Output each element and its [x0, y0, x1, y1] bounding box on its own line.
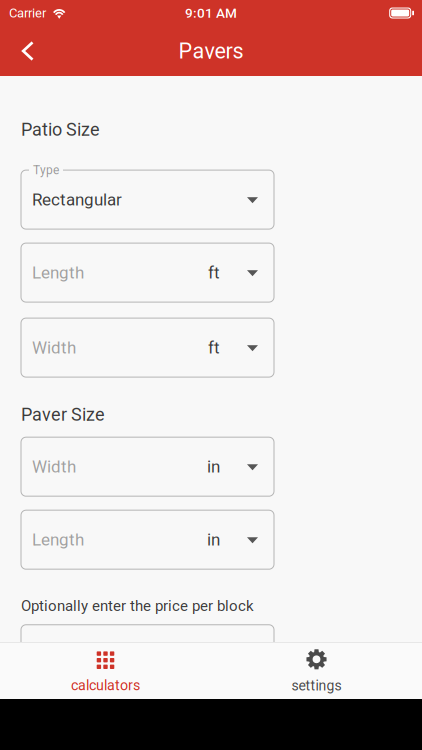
staticText: settings	[291, 677, 341, 694]
button[interactable]: Width	[21, 318, 274, 377]
staticText: Length	[32, 263, 84, 282]
staticText: Patio Size	[21, 119, 100, 140]
staticText: Type	[33, 163, 59, 177]
button[interactable]: calculators	[0, 642, 211, 699]
staticText: Carrier	[9, 5, 46, 21]
staticText: ft	[208, 338, 220, 357]
staticText: calculators	[71, 677, 140, 694]
staticText: Optionally enter the price per block	[21, 597, 254, 615]
button[interactable]: Back	[0, 26, 64, 76]
staticText: in	[207, 530, 220, 550]
staticText: Rectangular	[32, 190, 122, 209]
staticText: in	[207, 457, 220, 477]
staticText: Width	[32, 338, 76, 357]
staticText: Paver Size	[21, 404, 105, 425]
staticText: 9:01 AM	[185, 5, 237, 21]
staticText: Length	[32, 530, 84, 550]
staticText: ft	[208, 263, 220, 282]
staticText: Pavers	[178, 38, 243, 64]
button[interactable]: Width	[21, 437, 274, 496]
staticText: Width	[32, 457, 76, 477]
button[interactable]: settings	[211, 642, 422, 699]
button[interactable]: Rectangular	[21, 170, 274, 229]
button[interactable]: Price	[21, 625, 274, 684]
button[interactable]: Length	[21, 243, 274, 302]
button[interactable]: Length	[21, 510, 274, 569]
